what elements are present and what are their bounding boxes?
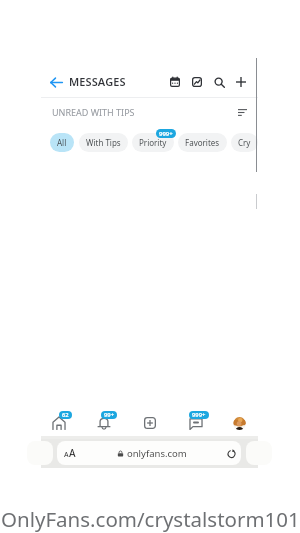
button[interactable]: Page settings bbox=[57, 441, 241, 465]
button[interactable]: New post bbox=[134, 405, 166, 437]
button[interactable]: Priority bbox=[132, 133, 174, 152]
button[interactable]: Notifications bbox=[88, 405, 120, 437]
button[interactable]: Home bbox=[43, 405, 75, 437]
button[interactable]: Calendar bbox=[164, 71, 186, 93]
button[interactable]: With Tips bbox=[79, 133, 128, 152]
staticText: Favorites bbox=[185, 137, 220, 148]
button[interactable]: Crystal Sto bbox=[231, 133, 258, 152]
staticText: All bbox=[57, 137, 67, 148]
staticText: With Tips bbox=[86, 137, 121, 148]
staticText: MESSAGES bbox=[69, 74, 126, 89]
staticText: 99+ bbox=[104, 411, 114, 419]
staticText: Priority bbox=[139, 137, 167, 148]
staticText: 62 bbox=[62, 411, 69, 419]
button[interactable]: Messages bbox=[180, 405, 212, 437]
button[interactable]: All bbox=[50, 133, 74, 152]
staticText: OnlyFans.com/crystalstorm101 bbox=[1, 505, 300, 533]
staticText: 999+ bbox=[192, 411, 206, 419]
staticText: onlyfans.com bbox=[127, 447, 187, 460]
button[interactable]: Favorites bbox=[178, 133, 227, 152]
staticText: A bbox=[64, 450, 69, 460]
staticText: UNREAD WITH TIPS bbox=[52, 106, 135, 118]
button[interactable]: Statistics bbox=[186, 71, 208, 93]
staticText: A bbox=[69, 446, 76, 460]
button[interactable]: Back bbox=[46, 72, 66, 92]
button[interactable]: Page settings bbox=[64, 446, 76, 460]
button[interactable]: New message bbox=[230, 71, 252, 93]
button[interactable]: Sort bbox=[234, 104, 250, 120]
button[interactable]: Search bbox=[208, 71, 230, 93]
staticText: 999+ bbox=[159, 130, 173, 138]
staticText: Crystal Sto bbox=[238, 137, 251, 148]
button[interactable]: Reload bbox=[225, 447, 238, 460]
button[interactable]: Profile bbox=[223, 405, 255, 437]
